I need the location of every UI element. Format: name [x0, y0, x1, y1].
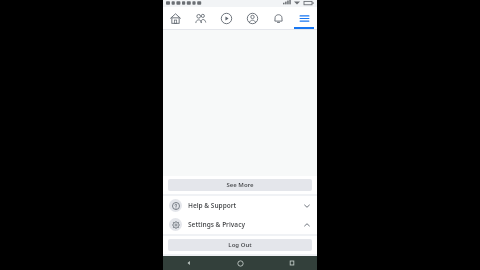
button[interactable]: Watch: [213, 7, 239, 29]
button[interactable]: See More: [168, 179, 312, 191]
button[interactable]: Notifications: [265, 7, 291, 29]
button[interactable]: Home: [215, 256, 266, 270]
staticText: Log Out: [228, 241, 252, 249]
button[interactable]: Home: [163, 7, 188, 29]
button[interactable]: Back: [163, 256, 215, 270]
button[interactable]: Profile: [239, 7, 265, 29]
button[interactable]: Settings & Privacy: [163, 215, 317, 234]
staticText: See More: [226, 181, 254, 189]
button[interactable]: Friends: [188, 7, 213, 29]
button[interactable]: Log Out: [168, 239, 312, 251]
button[interactable]: Menu: [291, 7, 317, 29]
button[interactable]: Recents: [266, 256, 317, 270]
staticText: Help & Support: [188, 201, 237, 210]
button[interactable]: Help & Support: [163, 196, 317, 215]
staticText: Settings & Privacy: [188, 220, 245, 229]
